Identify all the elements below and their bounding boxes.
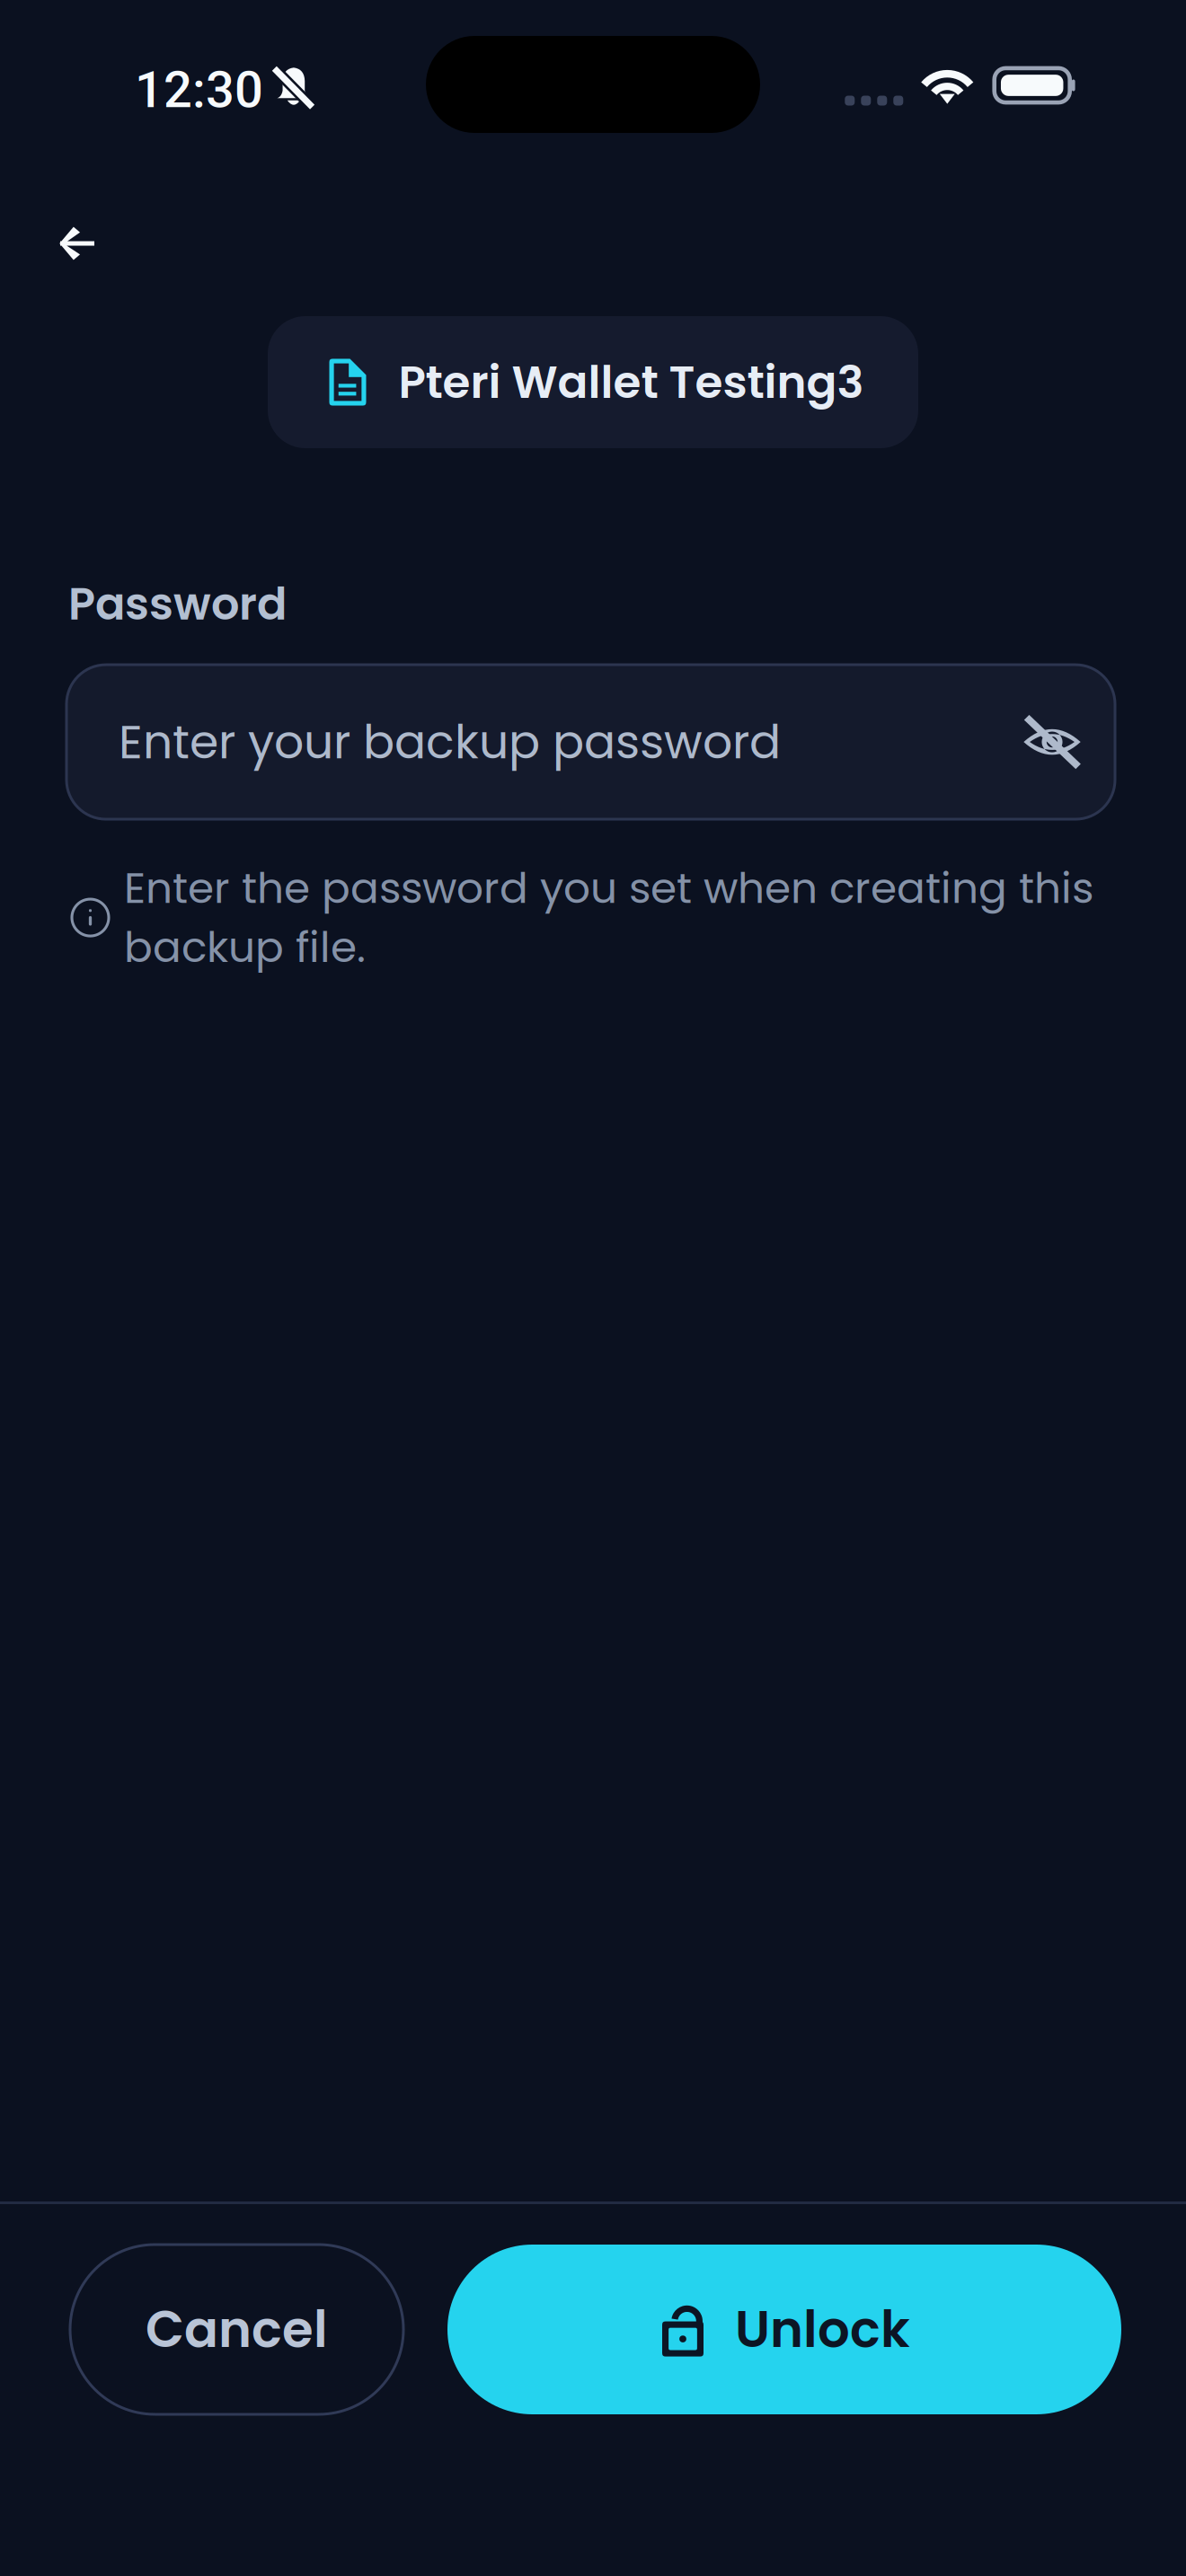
staticText: Pteri Wallet Testing3 [398, 351, 864, 414]
button[interactable]: Unlock [447, 2245, 1121, 2414]
button[interactable]: Show password [1005, 695, 1099, 789]
staticText: Unlock [735, 2294, 910, 2365]
staticText: Enter your backup password [119, 709, 781, 775]
staticText: Cancel [146, 2294, 328, 2365]
staticText: 12:30 [135, 60, 263, 119]
staticText: Enter the password you set when creating… [124, 859, 1093, 977]
button[interactable]: Back [34, 187, 120, 273]
staticText: Password [68, 573, 287, 635]
button[interactable]: Cancel [70, 2245, 403, 2414]
